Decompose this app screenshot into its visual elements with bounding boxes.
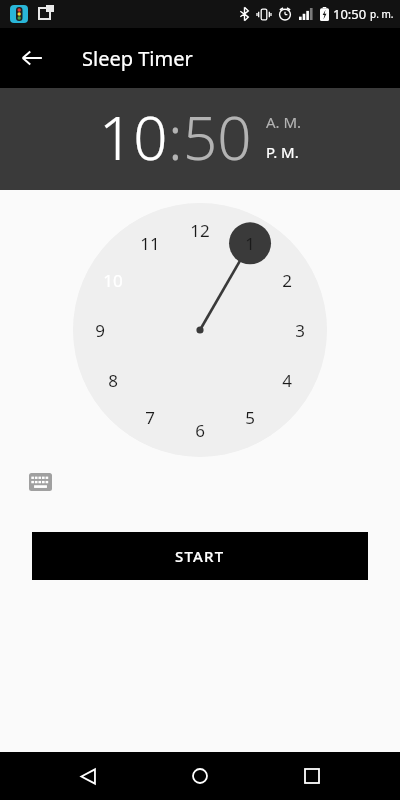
staticText: START xyxy=(175,546,225,566)
staticText: 10 xyxy=(99,96,168,178)
staticText: : xyxy=(168,96,183,178)
staticText: 50 xyxy=(183,96,252,178)
staticText: Sleep Timer xyxy=(82,45,193,72)
button[interactable]: P. M. xyxy=(266,141,299,163)
staticText: 12 xyxy=(190,219,210,242)
staticText: 9 xyxy=(95,319,105,342)
button[interactable]: Clock dial, hour 10 selected xyxy=(73,203,327,457)
button[interactable]: 10 xyxy=(99,96,168,178)
button[interactable]: START xyxy=(32,532,368,580)
staticText: 7 xyxy=(145,406,155,429)
button[interactable]: Home xyxy=(176,752,224,800)
staticText: 10:50 xyxy=(333,5,367,23)
button[interactable]: Recent apps xyxy=(288,752,336,800)
staticText: 8 xyxy=(108,369,118,392)
staticText: 4 xyxy=(282,369,292,392)
staticText: A. M. xyxy=(266,112,302,132)
button[interactable]: Back xyxy=(64,752,112,800)
staticText: 10 xyxy=(103,269,123,292)
button[interactable]: Switch to text input xyxy=(20,462,60,502)
staticText: 2 xyxy=(282,269,292,292)
button[interactable]: Back xyxy=(10,36,54,80)
staticText: 3 xyxy=(295,319,305,342)
staticText: 11 xyxy=(140,232,160,255)
staticText: 6 xyxy=(195,419,205,442)
button[interactable]: A. M. xyxy=(266,111,302,133)
staticText: P. M. xyxy=(266,142,299,162)
staticText: 1 xyxy=(245,232,255,255)
staticText: 5 xyxy=(245,406,255,429)
staticText: p. m. xyxy=(370,7,394,21)
button[interactable]: 50 xyxy=(183,96,252,178)
